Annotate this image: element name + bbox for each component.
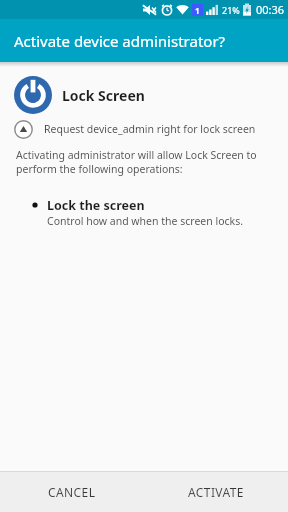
staticText: 00:36	[256, 2, 285, 17]
staticText: Lock Screen	[62, 86, 145, 105]
button[interactable]: Lock Screen	[0, 72, 288, 118]
staticText: Activating administrator will allow Lock…	[16, 148, 257, 176]
staticText: Control how and when the screen locks.	[47, 214, 243, 228]
button[interactable]: Request device_admin right for lock scre…	[0, 118, 288, 140]
staticText: Lock the screen	[47, 197, 145, 214]
staticText: Request device_admin right for lock scre…	[44, 122, 256, 136]
button[interactable]: ACTIVATE	[144, 472, 288, 512]
staticText: ACTIVATE	[188, 484, 244, 500]
staticText: 21%	[222, 4, 240, 16]
button[interactable]: CANCEL	[0, 472, 144, 512]
staticText: Activate device administrator?	[14, 31, 226, 51]
staticText: CANCEL	[48, 484, 96, 500]
staticText: 1	[195, 5, 200, 16]
